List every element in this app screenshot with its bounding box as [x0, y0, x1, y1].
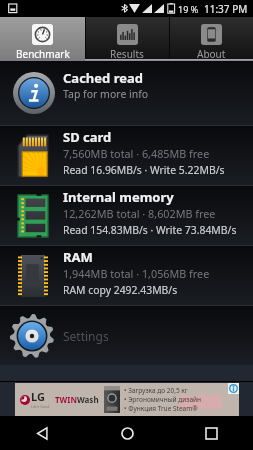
- staticText: 12,262MB total · 8,602MB free: [63, 206, 216, 221]
- button[interactable]: Cached read: [0, 61, 253, 125]
- staticText: LG: [31, 389, 45, 404]
- staticText: • Загрузка до 20,5 кг: [124, 386, 188, 395]
- staticText: SD card: [63, 128, 112, 146]
- staticText: Results: [110, 47, 144, 61]
- button[interactable]: About: [169, 17, 253, 61]
- staticText: Internal memory: [63, 188, 174, 206]
- staticText: Benchmark: [16, 47, 70, 61]
- staticText: Life's Good: [31, 404, 50, 409]
- staticText: Cached read: [63, 69, 143, 87]
- staticText: TWIN: [55, 394, 77, 405]
- button[interactable]: Results: [85, 17, 169, 61]
- button[interactable]: RAM: [0, 246, 253, 305]
- button[interactable]: Internal memory: [0, 186, 253, 245]
- staticText: Settings: [63, 328, 109, 344]
- staticText: Read 16.96MB/s · Write 5.22MB/s: [63, 163, 225, 177]
- button[interactable]: Benchmark: [0, 17, 85, 61]
- staticText: 1,944MB total · 1,056MB free: [63, 266, 210, 281]
- staticText: • Функция True Steam®: [124, 404, 198, 413]
- button[interactable]: SD card: [0, 126, 253, 185]
- button[interactable]: Recent apps: [169, 416, 253, 450]
- staticText: Wash: [77, 394, 99, 405]
- button[interactable]: Home: [85, 416, 169, 450]
- button[interactable]: LG: [15, 383, 239, 416]
- staticText: About: [197, 47, 226, 61]
- button[interactable]: Back: [0, 416, 85, 450]
- button[interactable]: Settings: [0, 306, 253, 365]
- staticText: 11:37 PM: [204, 2, 248, 16]
- staticText: RAM copy 2492.43MB/s: [63, 283, 178, 297]
- staticText: RAM: [63, 248, 93, 266]
- button[interactable]: Ad info: [228, 383, 239, 394]
- staticText: 19 %: [178, 3, 199, 15]
- staticText: 7,560MB total · 6,485MB free: [63, 146, 210, 161]
- staticText: Tap for more info: [63, 87, 149, 101]
- staticText: Read 154.83MB/s · Write 73.84MB/s: [63, 223, 237, 237]
- staticText: • Эргономичный дизайн: [124, 395, 202, 404]
